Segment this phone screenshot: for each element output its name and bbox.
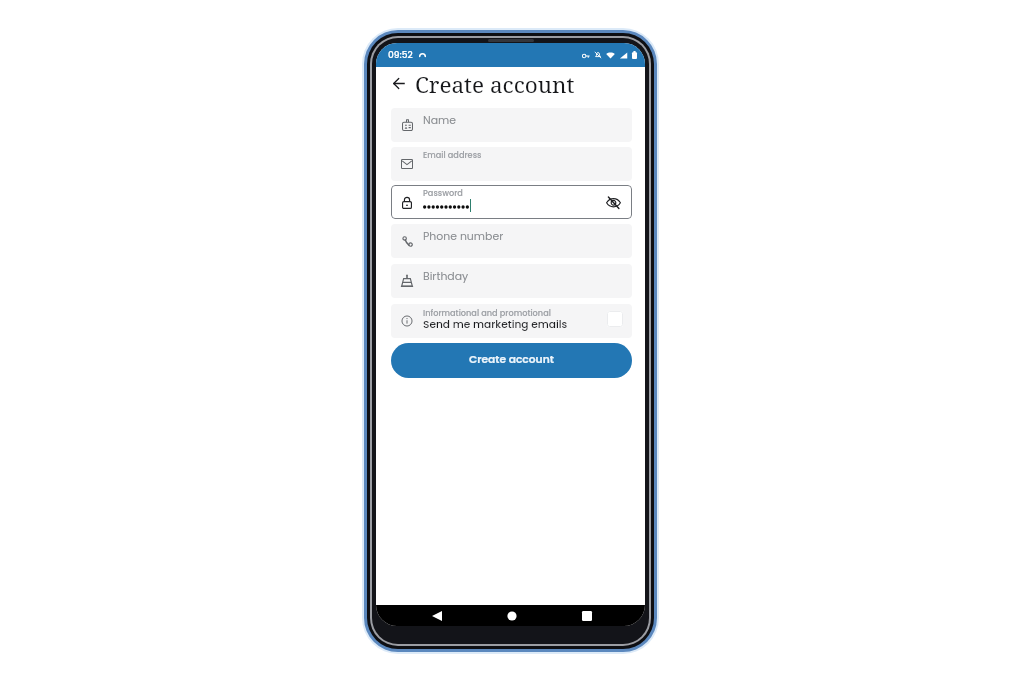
button[interactable]: Back [427, 606, 447, 626]
staticText: Phone number [423, 229, 504, 244]
button[interactable]: Informational and promotional [391, 304, 632, 338]
staticText: Send me marketing emails [423, 317, 568, 332]
staticText: 09:52 [388, 49, 413, 62]
button[interactable]: Email address [391, 147, 632, 181]
staticText: Create account [469, 352, 554, 367]
button[interactable]: Birthday [391, 264, 632, 298]
button[interactable]: Phone number [391, 224, 632, 258]
staticText: Password [423, 187, 463, 198]
button[interactable]: Create account [391, 343, 632, 378]
button[interactable]: Home [502, 606, 522, 626]
button[interactable]: Back [389, 74, 408, 93]
staticText: Informational and promotional [423, 307, 551, 318]
button[interactable]: Recent apps [577, 606, 597, 626]
button[interactable]: Password [391, 185, 632, 219]
staticText: Email address [423, 149, 482, 160]
button[interactable]: Name [391, 108, 632, 142]
button[interactable]: Hide password [605, 194, 622, 211]
staticText: Name [423, 113, 456, 128]
button[interactable]: Send me marketing emails checkbox [607, 311, 623, 327]
staticText: Create account [415, 69, 575, 100]
staticText: Birthday [423, 269, 469, 284]
